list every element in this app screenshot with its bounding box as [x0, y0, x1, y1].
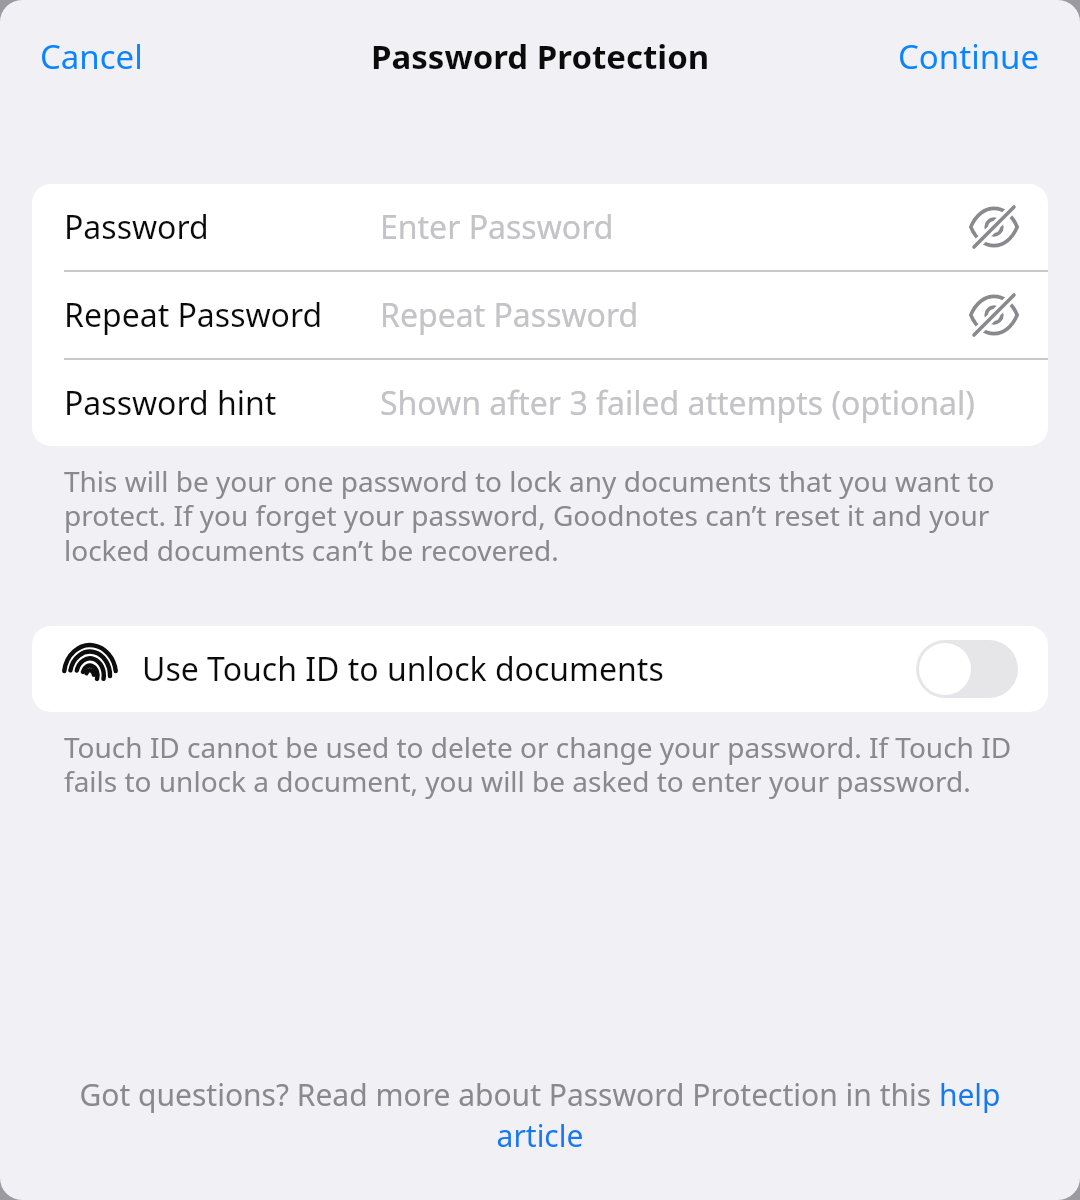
staticText: Repeat Password	[380, 293, 639, 337]
button[interactable]: Show password	[956, 277, 1032, 353]
button[interactable]: Repeat Password	[32, 272, 1048, 358]
staticText: Shown after 3 failed attempts (optional)	[380, 381, 975, 425]
button[interactable]: Password hint	[32, 360, 1048, 446]
staticText: Got questions? Read more about Password …	[64, 1074, 1016, 1156]
button[interactable]: Continue	[876, 24, 1062, 89]
button[interactable]: Got questions? Read more about Password …	[0, 1066, 1080, 1164]
button[interactable]: Use Touch ID to unlock documents	[916, 640, 1018, 698]
staticText: Password	[64, 205, 209, 249]
other: Touch ID	[64, 643, 116, 695]
button[interactable]: Cancel	[18, 24, 165, 89]
staticText: Enter Password	[380, 205, 614, 249]
staticText: Use Touch ID to unlock documents	[142, 647, 664, 691]
staticText: This will be your one password to lock a…	[64, 462, 1016, 570]
button[interactable]: Show password	[956, 189, 1032, 265]
staticText: Repeat Password	[64, 293, 323, 337]
button[interactable]: Touch ID	[32, 626, 1048, 712]
staticText: Password Protection	[371, 34, 710, 79]
staticText: Cancel	[40, 34, 143, 79]
staticText: Password hint	[64, 381, 277, 425]
staticText: Touch ID cannot be used to delete or cha…	[64, 728, 1016, 801]
button[interactable]: Password	[32, 184, 1048, 270]
staticText: Continue	[898, 34, 1040, 79]
